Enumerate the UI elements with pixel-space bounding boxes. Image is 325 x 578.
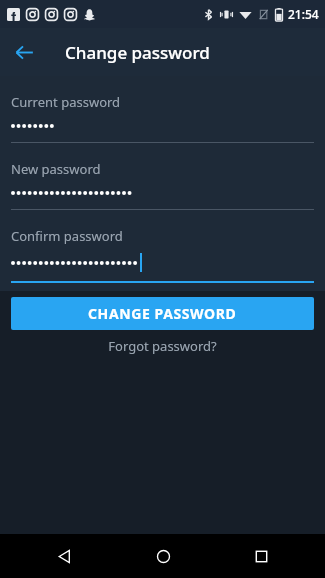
button[interactable]: Confirm password [11,210,314,283]
staticText: New password [11,160,101,178]
button[interactable]: Recent apps [243,538,279,574]
staticText: 21:54 [288,6,319,22]
button[interactable]: Forgot password? [0,334,325,358]
button[interactable]: Home [145,538,181,574]
button[interactable]: Current password [11,76,314,143]
staticText: Forgot password? [108,337,217,355]
button[interactable]: Back [46,538,82,574]
staticText: CHANGE PASSWORD [88,304,237,323]
staticText: Change password [65,41,210,64]
button[interactable]: CHANGE PASSWORD [11,297,314,330]
button[interactable]: Back [4,32,44,72]
staticText: Current password [11,93,121,111]
button[interactable]: New password [11,143,314,210]
staticText: Confirm password [11,227,123,245]
